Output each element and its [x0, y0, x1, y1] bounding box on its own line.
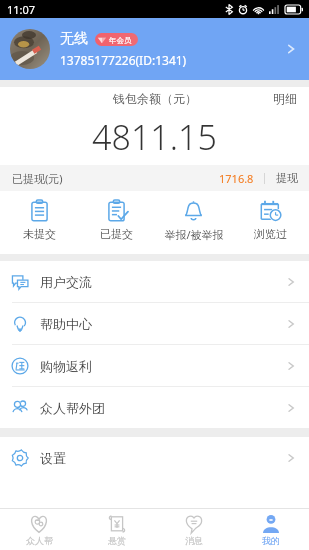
staticText: 消息: [185, 535, 203, 546]
staticText: 提现: [276, 171, 298, 185]
staticText: 我的: [262, 535, 280, 546]
staticText: 4811.15: [92, 114, 217, 160]
button[interactable]: 无线: [0, 18, 309, 80]
staticText: 用户交流: [40, 274, 92, 290]
staticText: 浏览过: [254, 227, 287, 241]
button[interactable]: 帮助中心: [0, 303, 309, 344]
button[interactable]: 设置: [0, 437, 309, 478]
button[interactable]: 众人帮外团: [0, 387, 309, 428]
staticText: 11:07: [7, 2, 36, 17]
staticText: 购物返利: [40, 358, 92, 374]
staticText: 帮助中心: [40, 316, 92, 332]
button[interactable]: 未提交: [0, 191, 78, 254]
staticText: 众人帮: [26, 535, 53, 546]
staticText: 1716.8: [219, 171, 254, 186]
button[interactable]: 众人帮: [0, 509, 78, 550]
button[interactable]: 消息: [155, 509, 232, 550]
button[interactable]: 明细: [261, 89, 309, 108]
button[interactable]: 举报/被举报: [155, 191, 232, 254]
staticText: 设置: [40, 450, 66, 466]
staticText: 明细: [273, 91, 297, 106]
staticText: 无线: [60, 30, 88, 48]
button[interactable]: 我的: [232, 509, 309, 550]
staticText: 钱包余额（元）: [113, 91, 197, 106]
staticText: 众人帮外团: [40, 400, 105, 416]
staticText: 悬赏: [108, 535, 126, 546]
button[interactable]: 已提交: [78, 191, 155, 254]
staticText: 已提交: [100, 227, 133, 241]
button[interactable]: 用户交流: [0, 261, 309, 302]
staticText: 已提现(元): [12, 171, 63, 186]
button[interactable]: 购物返利: [0, 345, 309, 386]
staticText: 年会员: [109, 36, 132, 45]
staticText: 13785177226(ID:1341): [60, 52, 187, 68]
staticText: 未提交: [23, 227, 56, 241]
button[interactable]: 提现: [265, 167, 309, 189]
other: Profile details: [283, 41, 299, 57]
button[interactable]: 年会员: [95, 33, 138, 46]
button[interactable]: 悬赏: [78, 509, 155, 550]
staticText: 举报/被举报: [164, 227, 224, 242]
button[interactable]: 浏览过: [232, 191, 309, 254]
